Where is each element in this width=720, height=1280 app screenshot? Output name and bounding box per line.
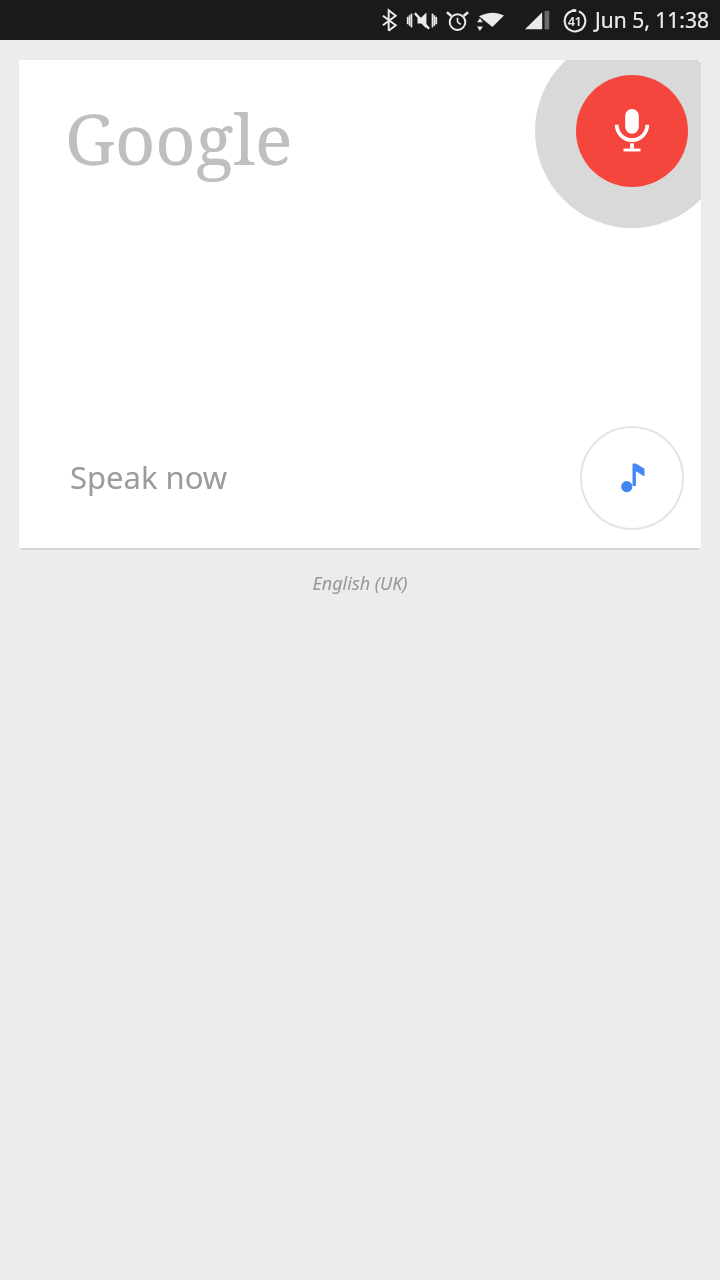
button[interactable]: English (UK) bbox=[0, 571, 720, 596]
other: Ringer muted, vibrate bbox=[406, 9, 440, 32]
button[interactable]: Microphone, listening bbox=[535, 60, 701, 228]
button[interactable]: Speak now bbox=[70, 456, 228, 498]
other: Mobile signal bbox=[524, 10, 550, 32]
other: Wi-Fi connected bbox=[475, 9, 504, 32]
staticText: Google bbox=[65, 90, 293, 185]
staticText: Jun 5, 11:38 bbox=[595, 6, 709, 35]
other: Bluetooth bbox=[381, 9, 397, 32]
other: Battery 41 percent bbox=[562, 8, 588, 34]
staticText: 41 bbox=[568, 13, 582, 29]
button[interactable]: Search a song bbox=[580, 426, 684, 530]
other: Alarm set bbox=[446, 9, 469, 32]
